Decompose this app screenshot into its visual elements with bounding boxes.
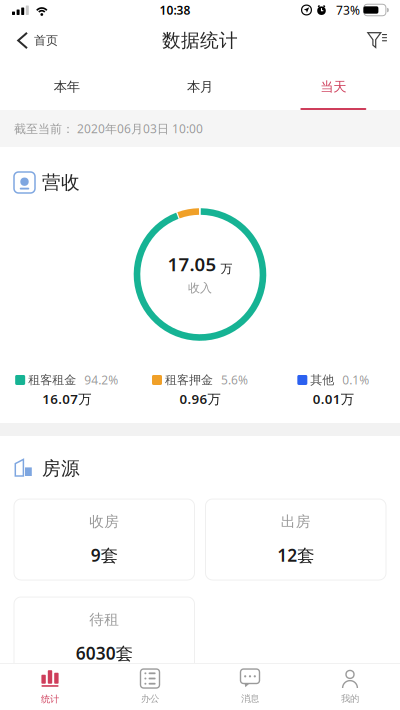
button[interactable]: 办公 xyxy=(100,663,200,710)
staticText: 统计 xyxy=(41,693,59,705)
staticText: 73% xyxy=(336,2,360,18)
staticText: 待租 xyxy=(89,610,119,628)
button[interactable]: 消息 xyxy=(200,663,300,710)
staticText: 租客租金 xyxy=(28,373,76,387)
staticText: 办公 xyxy=(141,693,159,704)
staticText: 出房 xyxy=(281,512,311,530)
staticText: 5.6% xyxy=(221,372,248,388)
button[interactable]: Filter xyxy=(351,20,400,61)
staticText: 万 xyxy=(220,261,232,276)
staticText: 0.01万 xyxy=(313,390,354,408)
staticText: 营收 xyxy=(42,171,80,194)
staticText: 我的 xyxy=(341,693,359,704)
staticText: 租客押金 xyxy=(165,373,213,387)
staticText: 94.2% xyxy=(84,372,118,388)
staticText: 收入 xyxy=(188,280,212,295)
staticText: 17.05 xyxy=(167,252,216,276)
button[interactable]: 出房 xyxy=(205,499,386,580)
staticText: 12套 xyxy=(277,543,314,566)
staticText: 本年 xyxy=(54,79,80,95)
staticText: 收房 xyxy=(89,512,119,530)
button[interactable]: 收房 xyxy=(14,499,194,580)
staticText: 10:38 xyxy=(159,2,190,18)
staticText: 消息 xyxy=(241,693,259,704)
staticText: 6030套 xyxy=(76,641,133,664)
button[interactable]: 统计 xyxy=(0,663,100,710)
staticText: 其他 xyxy=(310,373,334,387)
staticText: 当天 xyxy=(320,79,346,95)
staticText: 首页 xyxy=(34,33,58,48)
staticText: 截至当前： 2020年06月03日 10:00 xyxy=(14,120,203,136)
staticText: 房源 xyxy=(42,457,80,480)
button[interactable]: 本年 xyxy=(0,61,133,110)
staticText: 0.1% xyxy=(342,372,369,388)
button[interactable]: 我的 xyxy=(300,663,400,710)
button[interactable]: 本月 xyxy=(133,61,267,110)
staticText: 0.96万 xyxy=(179,390,220,408)
button[interactable]: 首页 xyxy=(0,20,72,61)
staticText: 本月 xyxy=(187,79,213,95)
staticText: 16.07万 xyxy=(42,390,91,408)
button[interactable]: 待租 xyxy=(14,597,194,678)
staticText: 数据统计 xyxy=(162,29,238,52)
staticText: 9套 xyxy=(91,543,118,566)
button[interactable]: 当天 xyxy=(267,61,400,110)
